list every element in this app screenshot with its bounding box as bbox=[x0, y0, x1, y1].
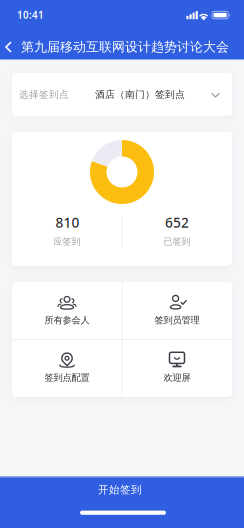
staticText: 选择签到点 bbox=[19, 88, 69, 101]
staticText: 签到点配置 bbox=[44, 372, 89, 384]
button[interactable]: 开始签到 bbox=[0, 477, 244, 528]
staticText: 810 bbox=[55, 213, 79, 232]
staticText: 应签到 bbox=[53, 236, 80, 247]
staticText: 652 bbox=[165, 213, 189, 232]
button[interactable]: 签到点配置 bbox=[12, 340, 122, 397]
staticText: 10:41 bbox=[17, 8, 44, 22]
button[interactable]: 签到员管理 bbox=[122, 282, 232, 339]
staticText: 欢迎屏 bbox=[163, 372, 190, 384]
button[interactable]: Back bbox=[5, 41, 12, 52]
staticText: 开始签到 bbox=[98, 483, 142, 496]
staticText: 已签到 bbox=[163, 236, 190, 247]
staticText: 酒店（南门）签到点 bbox=[95, 88, 185, 101]
staticText: 第九届移动互联网设计趋势讨论大会 bbox=[21, 39, 229, 55]
button[interactable]: 欢迎屏 bbox=[122, 340, 232, 397]
staticText: 签到员管理 bbox=[154, 314, 199, 326]
button[interactable]: 选择签到点 bbox=[12, 73, 232, 116]
button[interactable]: 所有参会人 bbox=[12, 282, 122, 339]
staticText: 所有参会人 bbox=[44, 314, 89, 326]
